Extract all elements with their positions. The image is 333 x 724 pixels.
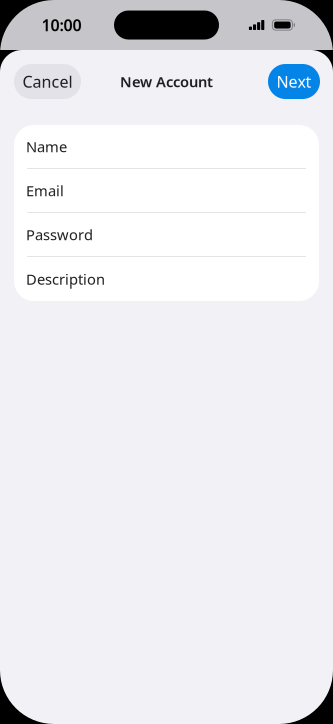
button[interactable]: Email [14,169,319,213]
staticText: New Account [120,72,213,91]
staticText: Email [26,181,64,200]
staticText: Next [276,71,311,92]
button[interactable]: Cancel [14,64,81,99]
button[interactable]: Name [14,125,319,169]
staticText: Name [26,137,67,156]
staticText: Cancel [22,71,72,92]
staticText: Description [26,269,105,289]
staticText: 10:00 [41,14,81,36]
button[interactable]: Password [14,213,319,257]
staticText: Password [26,225,93,244]
button[interactable]: Next [268,64,320,99]
button[interactable]: Description [14,257,319,301]
